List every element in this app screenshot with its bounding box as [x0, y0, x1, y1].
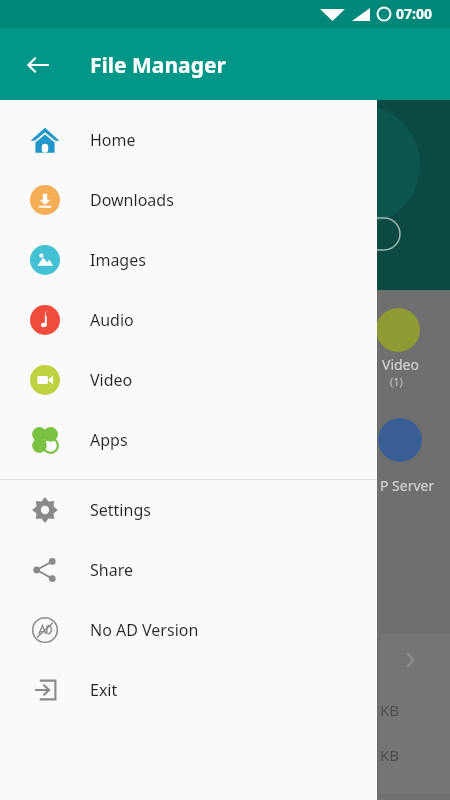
- staticText: Downloads: [90, 189, 174, 211]
- button[interactable]: Back: [18, 45, 58, 85]
- button[interactable]: Audio: [0, 290, 377, 350]
- staticText: Video: [382, 355, 419, 374]
- staticText: Share: [90, 559, 133, 581]
- button[interactable]: Downloads: [0, 170, 377, 230]
- button[interactable]: Video: [0, 350, 377, 410]
- staticText: Settings: [90, 499, 151, 521]
- staticText: File Manager: [90, 51, 226, 80]
- staticText: Home: [90, 129, 136, 151]
- staticText: No AD Version: [90, 619, 199, 641]
- staticText: 07:00: [396, 4, 432, 23]
- staticText: Apps: [90, 429, 128, 451]
- staticText: Audio: [90, 309, 134, 331]
- button[interactable]: Images: [0, 230, 377, 290]
- staticText: KB: [380, 745, 400, 765]
- button[interactable]: Share: [0, 540, 377, 600]
- staticText: P Server: [380, 476, 435, 495]
- staticText: Video: [90, 369, 133, 391]
- staticText: Exit: [90, 679, 118, 701]
- button[interactable]: Settings: [0, 480, 377, 540]
- staticText: (1): [390, 374, 403, 389]
- button[interactable]: No AD Version: [0, 600, 377, 660]
- staticText: KB: [380, 700, 400, 720]
- button[interactable]: Home: [0, 110, 377, 170]
- staticText: Images: [90, 249, 146, 271]
- button[interactable]: Apps: [0, 410, 377, 470]
- button[interactable]: Exit: [0, 660, 377, 720]
